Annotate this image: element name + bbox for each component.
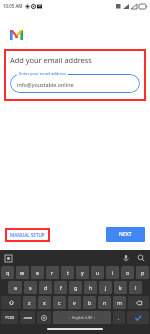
button[interactable]: o <box>121 266 134 279</box>
button[interactable]: d <box>39 281 52 294</box>
staticText: NEXT <box>119 231 132 238</box>
button[interactable]: s <box>24 281 37 294</box>
button[interactable]: MANUAL SETUP <box>5 228 50 242</box>
button[interactable]: ‹ English (UK) › <box>53 311 111 324</box>
staticText: s <box>29 284 32 291</box>
button[interactable]: z <box>23 296 36 309</box>
staticText: z <box>28 299 31 306</box>
staticText: d <box>44 284 48 291</box>
button[interactable]: b <box>83 296 96 309</box>
staticText: n <box>103 299 107 306</box>
staticText: b <box>88 299 92 306</box>
staticText: u <box>96 269 100 276</box>
staticText: . <box>118 315 120 321</box>
staticText: i <box>112 269 114 276</box>
staticText: v <box>73 299 76 306</box>
button[interactable]: Shift <box>1 296 21 309</box>
button[interactable]: Search <box>137 254 145 262</box>
button[interactable]: c <box>53 296 66 309</box>
button[interactable]: .com <box>20 311 35 324</box>
staticText: 10:05 AM <box>3 3 23 9</box>
staticText: info@youstable.online <box>17 81 74 88</box>
staticText: a <box>14 284 17 291</box>
button[interactable]: j <box>99 281 112 294</box>
button[interactable]: n <box>98 296 111 309</box>
button[interactable]: NEXT <box>106 227 145 242</box>
button[interactable]: Clipboard <box>5 255 12 262</box>
button[interactable]: h <box>84 281 97 294</box>
button[interactable]: p <box>136 266 149 279</box>
staticText: y <box>81 269 84 276</box>
staticText: ?123 <box>5 315 15 321</box>
button[interactable] <box>37 311 51 324</box>
button[interactable]: x <box>38 296 51 309</box>
staticText: e <box>36 269 39 276</box>
button[interactable]: Voice input <box>122 254 130 262</box>
button[interactable]: l <box>129 281 142 294</box>
button[interactable]: f <box>54 281 67 294</box>
button[interactable]: ?123 <box>1 311 18 324</box>
button[interactable]: a <box>8 281 22 294</box>
button[interactable]: u <box>91 266 104 279</box>
button[interactable]: t <box>61 266 74 279</box>
button[interactable]: k <box>114 281 127 294</box>
button[interactable]: i <box>106 266 119 279</box>
button[interactable]: w <box>16 266 29 279</box>
staticText: MANUAL SETUP <box>10 232 45 238</box>
staticText: t <box>67 269 69 276</box>
staticText: m <box>117 299 122 306</box>
staticText: g <box>74 284 78 291</box>
button[interactable]: m <box>113 296 126 309</box>
button[interactable]: . <box>113 311 125 324</box>
button[interactable]: v <box>68 296 81 309</box>
staticText: l <box>135 284 137 291</box>
staticText: ‹ English (UK) › <box>69 315 96 320</box>
button[interactable]: y <box>76 266 89 279</box>
staticText: o <box>126 269 130 276</box>
staticText: Enter your email address <box>19 71 66 76</box>
button[interactable]: e <box>31 266 44 279</box>
staticText: w <box>20 269 25 276</box>
staticText: x <box>43 299 46 306</box>
button[interactable]: g <box>69 281 82 294</box>
button[interactable]: r <box>46 266 59 279</box>
button[interactable]: Backspace <box>128 296 149 309</box>
staticText: f <box>60 284 62 291</box>
staticText: j <box>105 284 107 291</box>
button[interactable]: q <box>1 266 14 279</box>
staticText: c <box>58 299 61 306</box>
staticText: Add your email address <box>10 55 92 65</box>
button[interactable]: info@youstable.online <box>10 74 140 93</box>
staticText: q <box>6 269 10 276</box>
staticText: .com <box>23 315 33 320</box>
staticText: r <box>51 269 54 276</box>
staticText: h <box>89 284 93 291</box>
staticText: k <box>119 284 122 291</box>
staticText: p <box>141 269 145 276</box>
button[interactable] <box>127 311 149 324</box>
